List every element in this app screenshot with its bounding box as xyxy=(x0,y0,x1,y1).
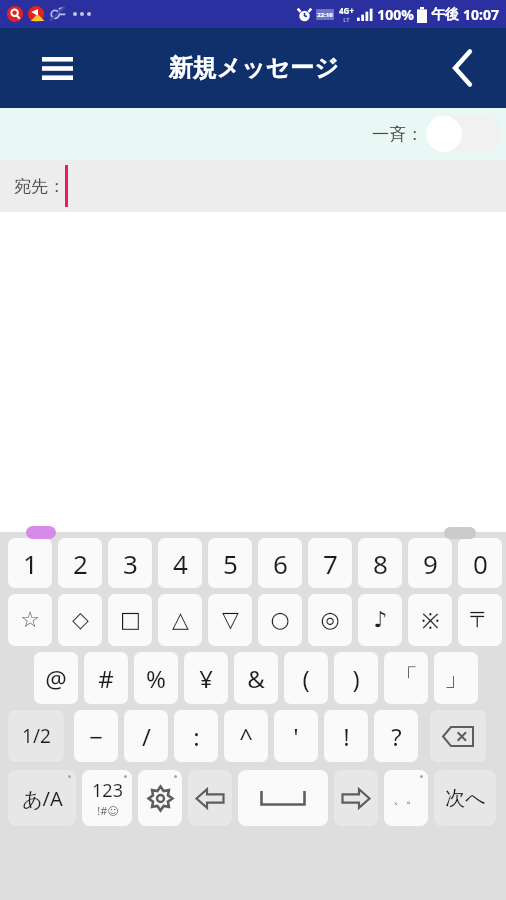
button[interactable]: ◇ xyxy=(58,594,102,646)
button[interactable]: 次へ xyxy=(434,770,496,826)
button[interactable]: Backspace xyxy=(430,710,486,762)
button[interactable]: Settings xyxy=(138,770,182,826)
staticText: 次へ xyxy=(445,786,486,811)
staticText: 4 xyxy=(173,546,188,581)
button[interactable]: ? xyxy=(374,710,418,762)
button[interactable]: / xyxy=(124,710,168,762)
button[interactable]: □ xyxy=(108,594,152,646)
button[interactable]: # xyxy=(84,652,128,704)
button[interactable]: ) xyxy=(334,652,378,704)
button[interactable]: ◎ xyxy=(308,594,352,646)
staticText: ( xyxy=(302,662,310,695)
button[interactable]: 123 xyxy=(82,770,132,826)
button[interactable]: 8 xyxy=(358,538,402,588)
button[interactable]: : xyxy=(174,710,218,762)
staticText: ! xyxy=(343,720,350,753)
button[interactable]: 4 xyxy=(158,538,202,588)
button[interactable]: 「 xyxy=(384,652,428,704)
staticText: 0 xyxy=(473,546,488,581)
button[interactable]: ( xyxy=(284,652,328,704)
button[interactable]: Cursor left xyxy=(188,770,232,826)
button[interactable]: ※ xyxy=(408,594,452,646)
staticText: ◇ xyxy=(72,607,89,633)
staticText: 4G+ xyxy=(339,5,354,16)
staticText: 〒 xyxy=(469,606,491,634)
button[interactable]: 5 xyxy=(208,538,252,588)
button[interactable]: 1 xyxy=(8,538,52,588)
staticText: !#☺ xyxy=(97,803,119,818)
staticText: : xyxy=(193,720,200,753)
staticText: & xyxy=(247,662,265,695)
staticText: 8 xyxy=(373,546,388,581)
button[interactable]: ' xyxy=(274,710,318,762)
button[interactable]: Back xyxy=(438,44,486,92)
staticText: 7 xyxy=(323,546,338,581)
staticText: ) xyxy=(352,662,360,695)
button[interactable]: 0 xyxy=(458,538,502,588)
button[interactable]: 1/2 xyxy=(8,710,64,762)
staticText: 、。 xyxy=(393,790,419,806)
staticText: 5 xyxy=(223,546,238,581)
staticText: ※ xyxy=(421,605,440,635)
button[interactable]: @ xyxy=(34,652,78,704)
staticText: ' xyxy=(293,720,299,753)
button[interactable]: ☆ xyxy=(8,594,52,646)
button[interactable]: △ xyxy=(158,594,202,646)
staticText: 123 xyxy=(92,778,123,803)
staticText: ◎ xyxy=(320,607,340,633)
staticText: 「 xyxy=(394,663,418,693)
button[interactable]: ^ xyxy=(224,710,268,762)
staticText: 新規メッセージ xyxy=(168,53,339,83)
button[interactable]: ¥ xyxy=(184,652,228,704)
staticText: @ xyxy=(45,662,67,695)
staticText: % xyxy=(146,662,166,695)
button[interactable]: ▽ xyxy=(208,594,252,646)
staticText: 一斉： xyxy=(372,124,423,145)
staticText: ? xyxy=(391,720,402,753)
button[interactable]: 、。 xyxy=(384,770,428,826)
staticText: 1/2 xyxy=(22,723,51,749)
staticText: 100% xyxy=(377,5,414,24)
staticText: 9 xyxy=(423,546,438,581)
button[interactable]: − xyxy=(74,710,118,762)
staticText: 1 xyxy=(23,546,38,581)
staticText: あ/A xyxy=(22,785,63,812)
button[interactable]: 一斉： xyxy=(372,115,502,153)
button[interactable]: 」 xyxy=(434,652,478,704)
staticText: ▽ xyxy=(222,607,239,633)
button[interactable]: 6 xyxy=(258,538,302,588)
staticText: □ xyxy=(120,607,141,633)
staticText: ○ xyxy=(270,607,290,633)
staticText: 22:10 xyxy=(317,11,333,19)
staticText: 」 xyxy=(444,663,468,693)
staticText: − xyxy=(89,720,103,753)
staticText: 3 xyxy=(123,546,138,581)
staticText: 午後 xyxy=(431,6,459,24)
button[interactable]: Space xyxy=(238,770,328,826)
staticText: # xyxy=(98,662,114,695)
staticText: ♪ xyxy=(373,607,388,633)
staticText: / xyxy=(142,720,151,753)
button[interactable]: 7 xyxy=(308,538,352,588)
button[interactable]: & xyxy=(234,652,278,704)
staticText: 6 xyxy=(273,546,288,581)
button[interactable]: % xyxy=(134,652,178,704)
staticText: ^ xyxy=(239,720,253,753)
staticText: ¥ xyxy=(199,662,213,695)
button[interactable]: 2 xyxy=(58,538,102,588)
button[interactable]: 9 xyxy=(408,538,452,588)
staticText: LT xyxy=(343,16,350,24)
button[interactable]: あ/A xyxy=(8,770,76,826)
button[interactable]: ♪ xyxy=(358,594,402,646)
button[interactable]: ○ xyxy=(258,594,302,646)
button[interactable]: Menu xyxy=(34,45,80,91)
staticText: ☆ xyxy=(20,607,40,633)
staticText: △ xyxy=(172,607,189,633)
button[interactable]: 宛先： xyxy=(0,160,506,212)
button[interactable]: 3 xyxy=(108,538,152,588)
button[interactable]: Cursor right xyxy=(334,770,378,826)
button[interactable]: ! xyxy=(324,710,368,762)
staticText: 10:07 xyxy=(463,5,499,24)
button[interactable]: 〒 xyxy=(458,594,502,646)
staticText: 2 xyxy=(73,546,88,581)
